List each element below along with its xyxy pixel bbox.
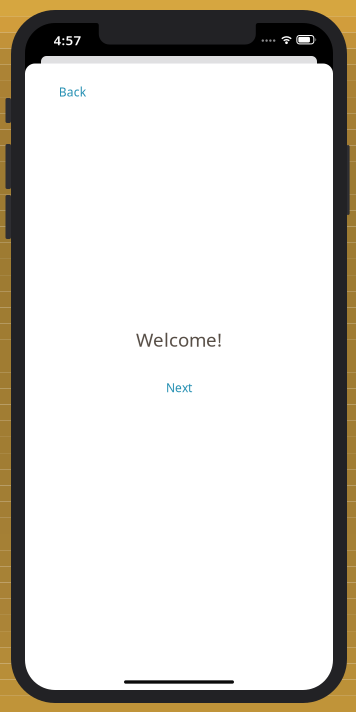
button[interactable]: Next: [156, 373, 202, 402]
staticText: Back: [59, 84, 86, 100]
staticText: 4:57: [53, 31, 81, 49]
button[interactable]: Back: [50, 77, 95, 107]
staticText: Welcome!: [136, 327, 222, 352]
staticText: Next: [166, 380, 192, 395]
